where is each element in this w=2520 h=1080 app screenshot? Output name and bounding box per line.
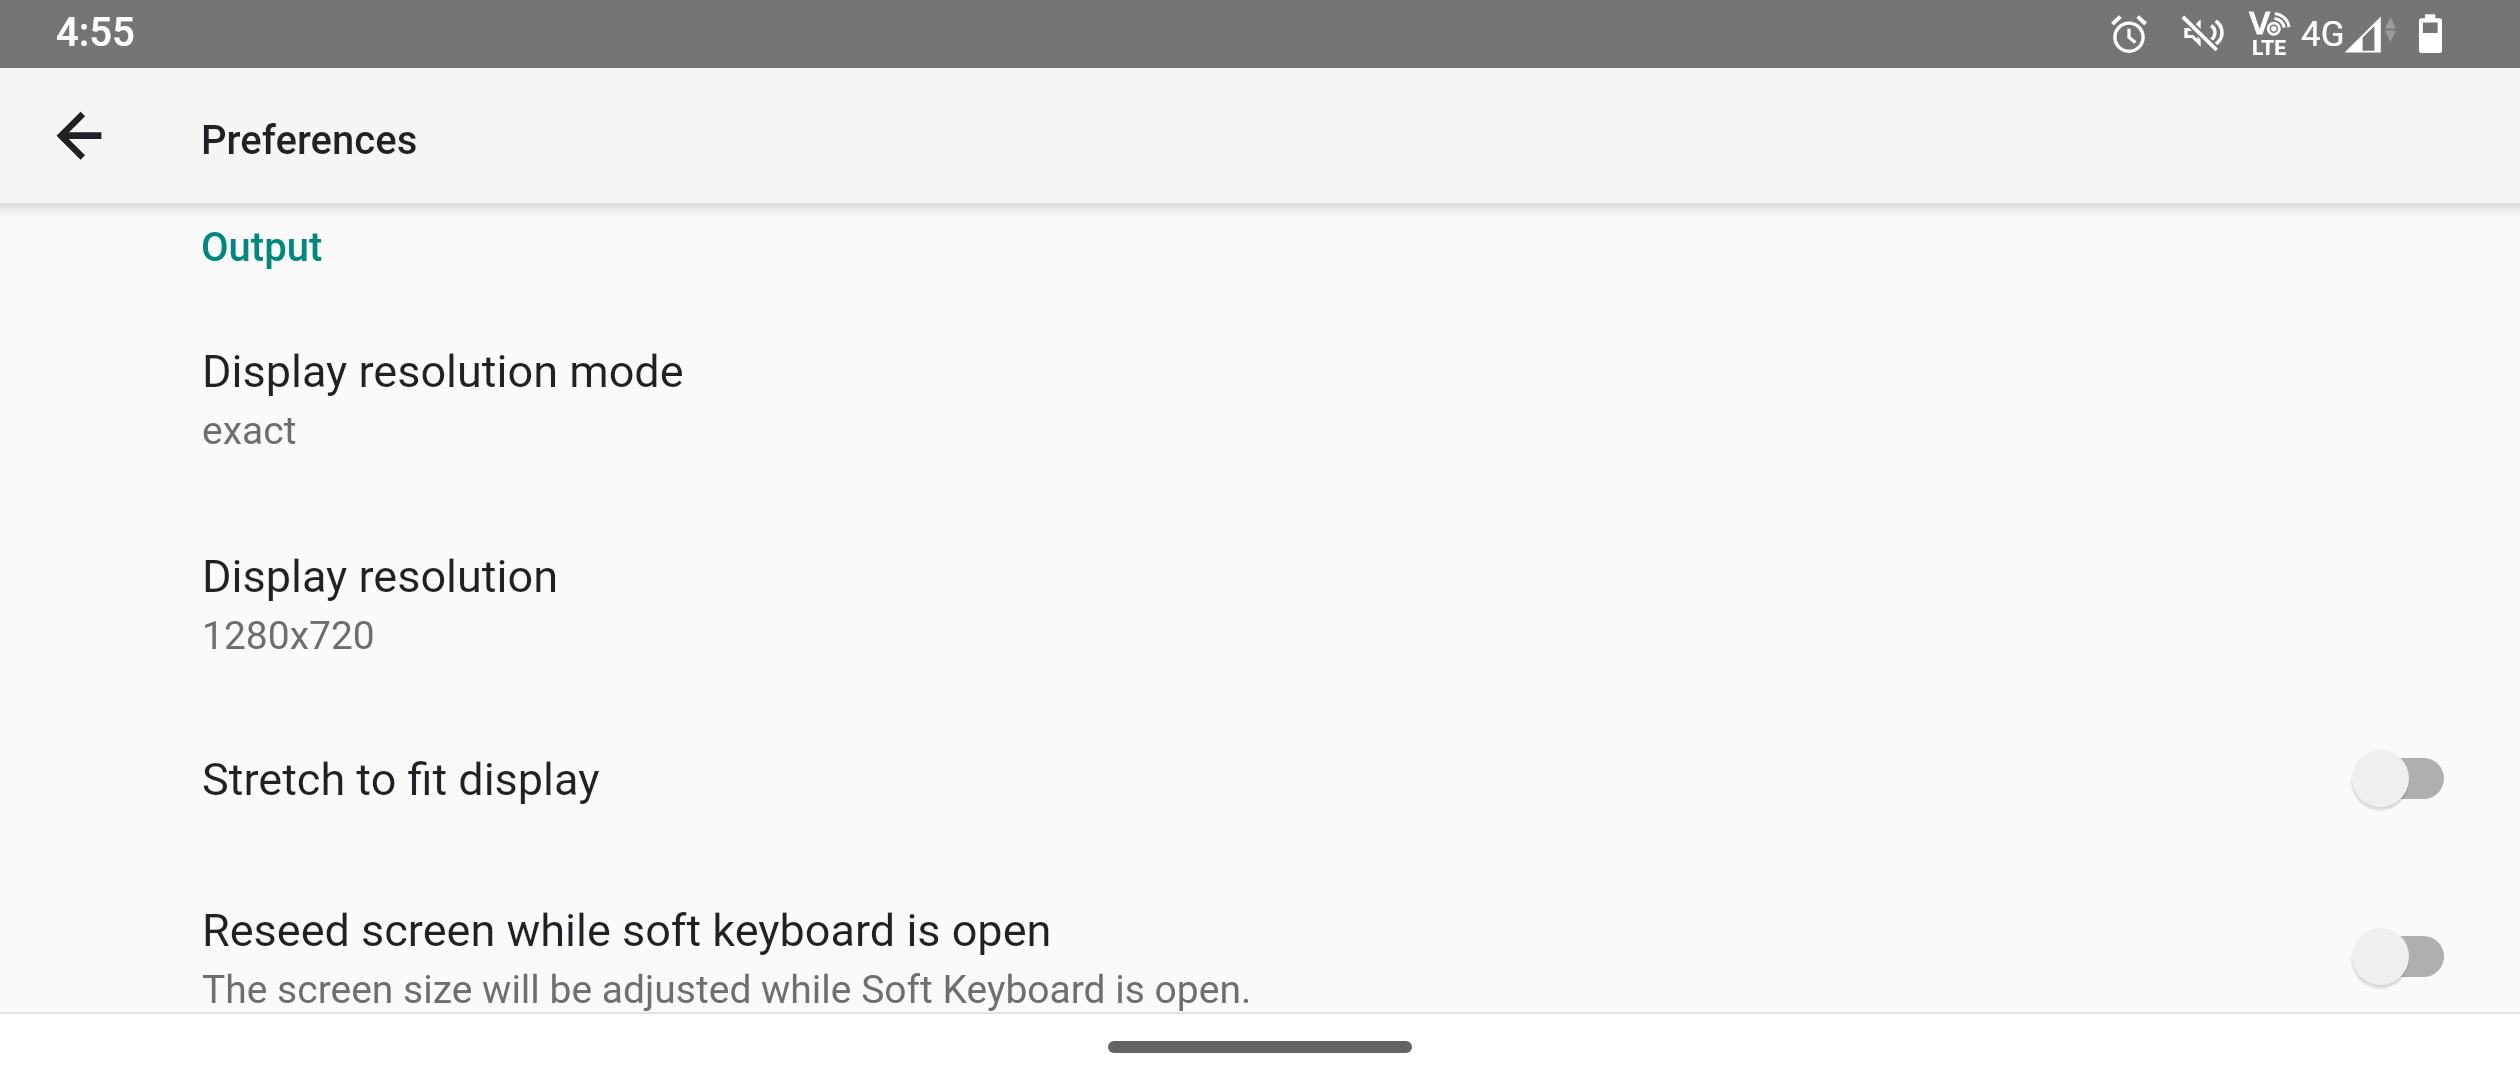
staticText: 4G: [2301, 14, 2345, 55]
staticText: Display resolution mode: [202, 345, 684, 398]
staticText: 1280x720: [202, 613, 375, 659]
button[interactable]: Navigate up: [31, 88, 127, 184]
button[interactable]: Stretch to fit display: [0, 708, 2520, 848]
staticText: Output: [201, 224, 323, 271]
staticText: Reseed screen while soft keyboard is ope…: [202, 904, 1052, 957]
staticText: exact: [202, 408, 297, 454]
button[interactable]: Reseed screen while soft keyboard is ope…: [0, 866, 2520, 1012]
staticText: Stretch to fit display: [202, 753, 600, 806]
button[interactable]: Reseed screen while soft keyboard is ope…: [2330, 908, 2480, 1004]
staticText: The screen size will be adjusted while S…: [202, 967, 1252, 1013]
staticText: Display resolution: [202, 550, 559, 603]
button[interactable]: Stretch to fit display, off: [2330, 730, 2480, 826]
staticText: Preferences: [201, 117, 418, 164]
staticText: LTE: [2252, 36, 2287, 61]
button[interactable]: Display resolution mode: [0, 298, 2520, 503]
button[interactable]: Display resolution: [0, 503, 2520, 708]
staticText: 4:55: [56, 9, 135, 56]
